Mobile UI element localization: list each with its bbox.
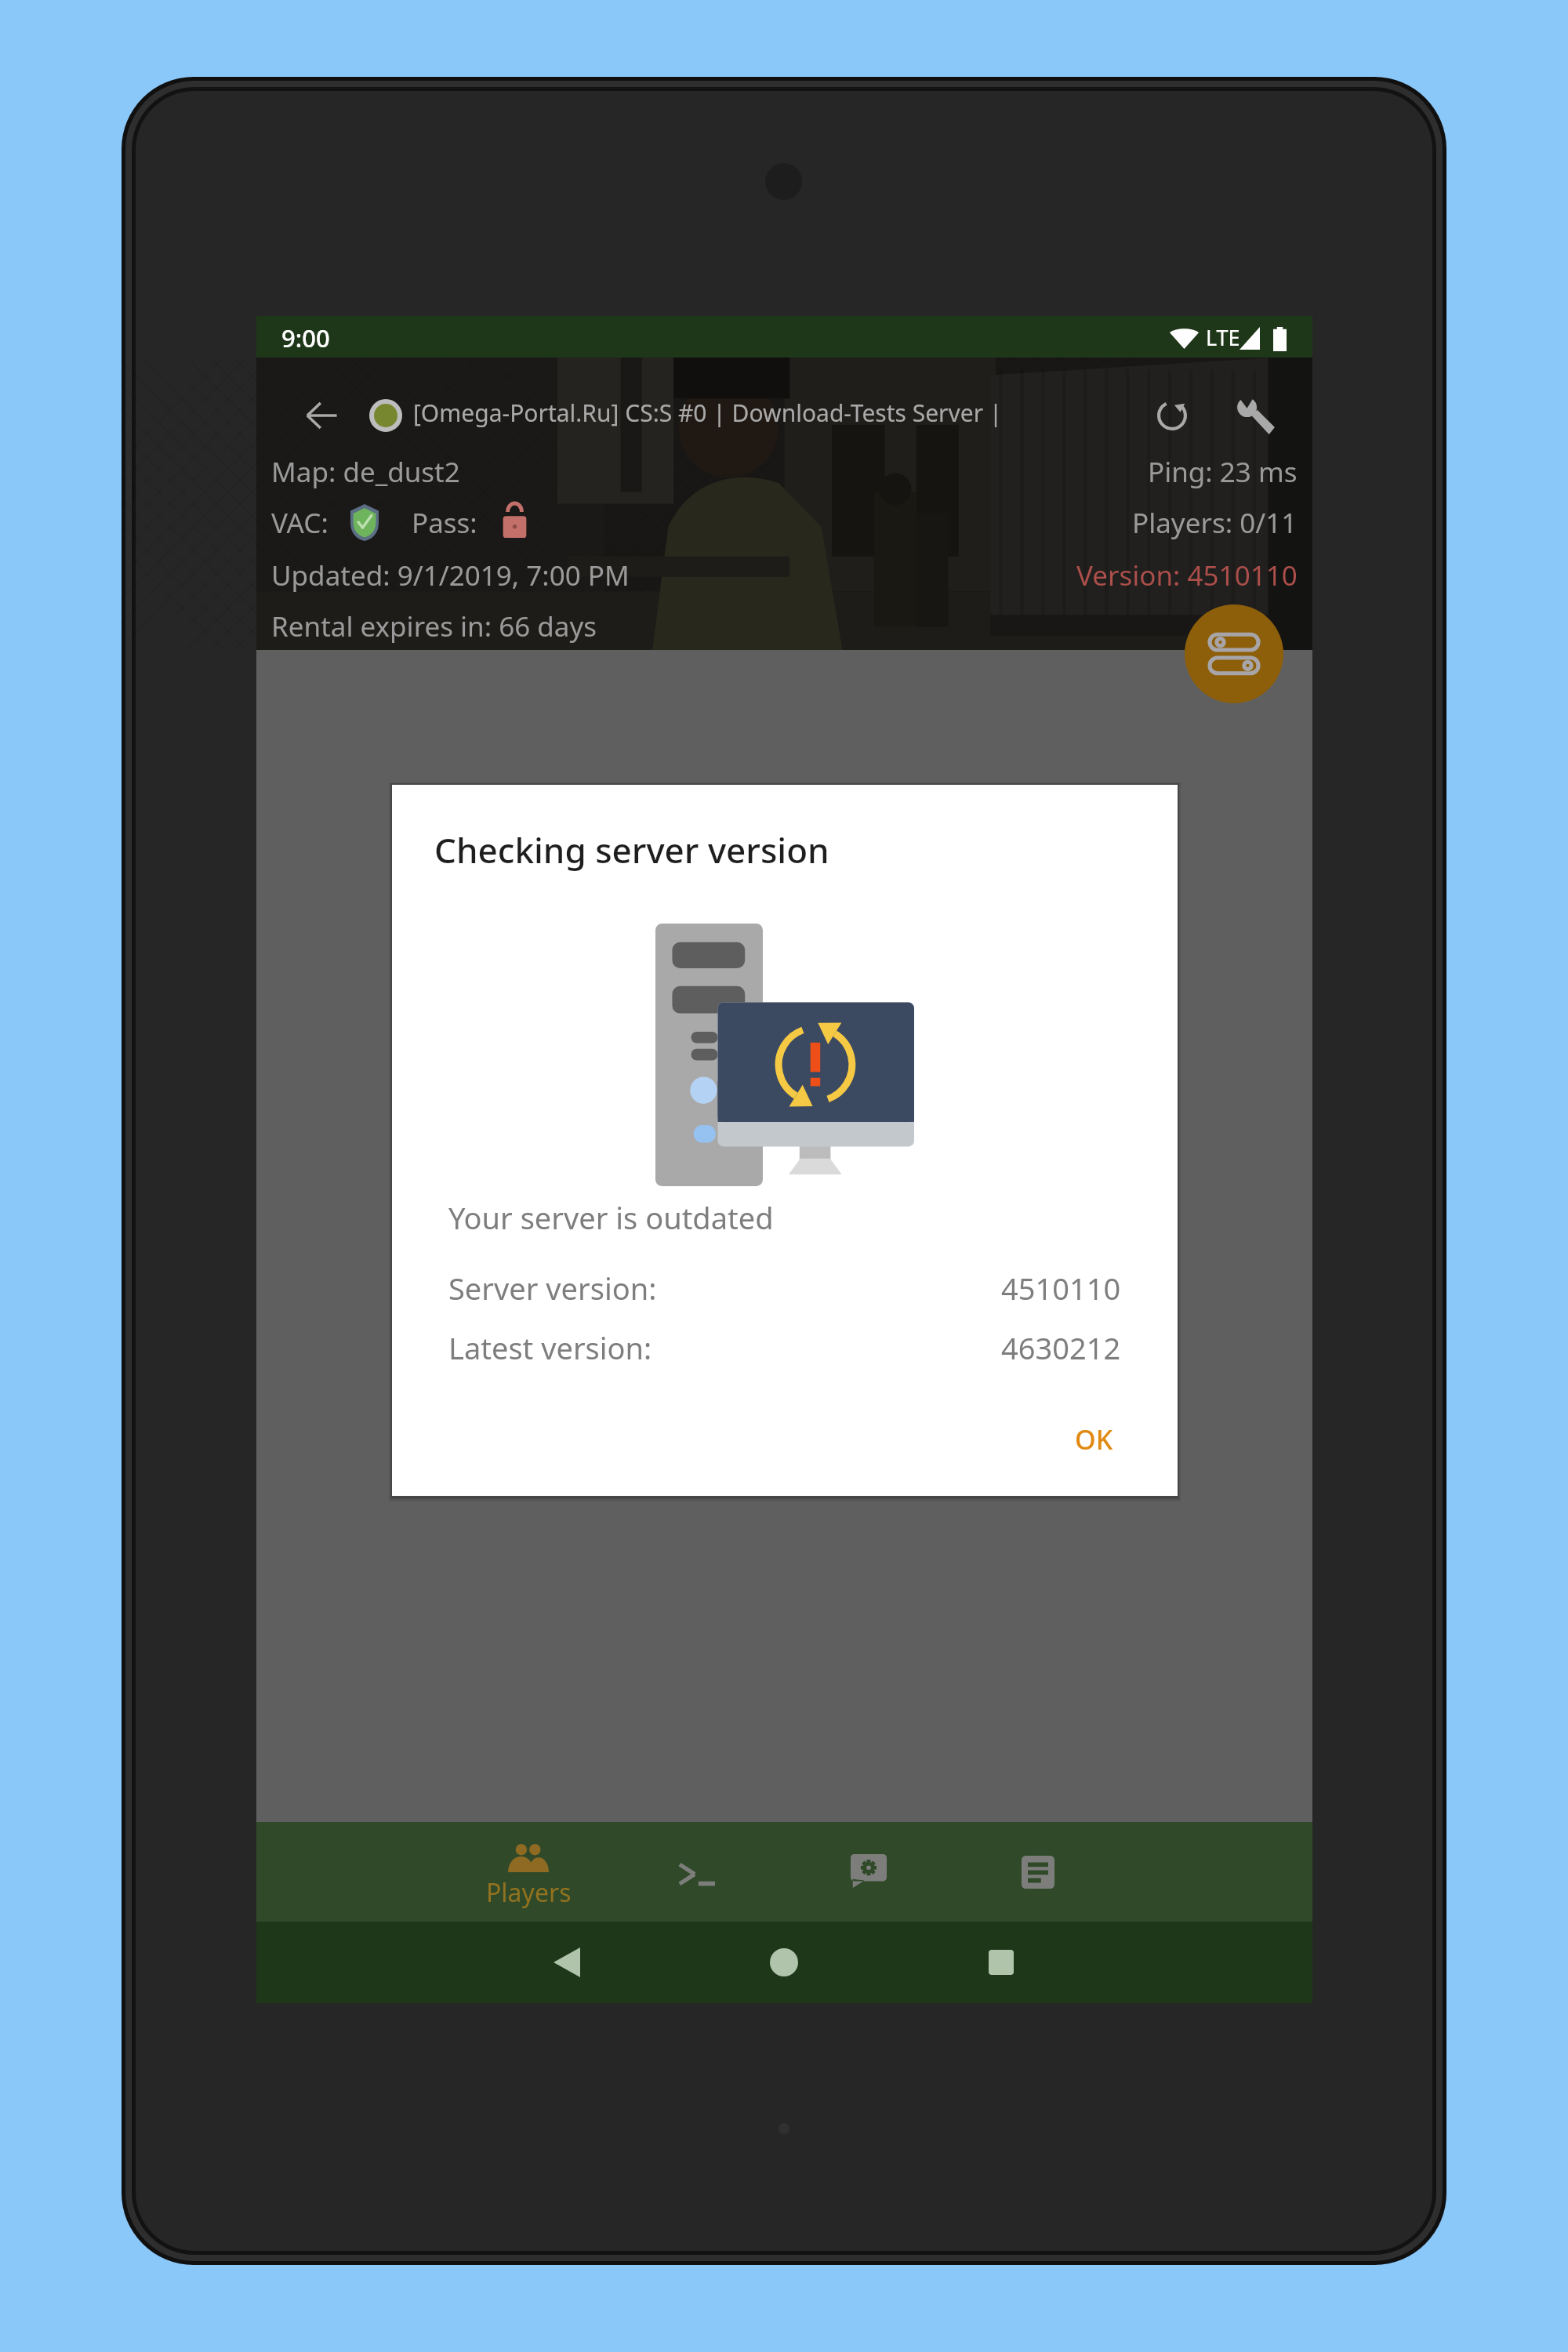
button[interactable]: Home bbox=[729, 1922, 839, 2003]
button[interactable]: Chat settings bbox=[784, 1822, 953, 1922]
staticText: LTE bbox=[1206, 323, 1240, 352]
staticText: Your server is outdated bbox=[448, 1197, 774, 1238]
staticText: Players: 0/11 bbox=[1132, 504, 1298, 542]
staticText: Pass: bbox=[412, 504, 477, 542]
button[interactable]: Players bbox=[444, 1822, 613, 1922]
button[interactable]: Console bbox=[612, 1822, 781, 1922]
staticText: [Omega-Portal.Ru] CS:S #0 | Download-Tes… bbox=[413, 397, 1003, 429]
button[interactable]: Recents bbox=[946, 1922, 1056, 2003]
button[interactable]: Back bbox=[512, 1922, 622, 2003]
staticText: Server version: bbox=[448, 1268, 657, 1308]
staticText: Map: de_dust2 bbox=[271, 453, 460, 491]
staticText: Updated: 9/1/2019, 7:00 PM bbox=[271, 557, 630, 594]
staticText: 4630212 bbox=[1001, 1327, 1121, 1368]
staticText: Checking server version bbox=[434, 826, 829, 873]
staticText: Players bbox=[486, 1875, 572, 1910]
button[interactable]: Settings bbox=[1216, 376, 1294, 455]
button[interactable]: Refresh bbox=[1133, 376, 1211, 455]
button[interactable]: Back bbox=[282, 376, 361, 455]
staticText: VAC: bbox=[271, 504, 328, 542]
staticText: OK bbox=[1075, 1421, 1113, 1457]
staticText: Ping: 23 ms bbox=[1148, 453, 1298, 491]
staticText: Latest version: bbox=[448, 1327, 652, 1368]
staticText: Version: 4510110 bbox=[1076, 557, 1298, 594]
staticText: 4510110 bbox=[1001, 1268, 1121, 1308]
staticText: 9:00 bbox=[281, 321, 330, 354]
staticText: Rental expires in: 66 days bbox=[271, 608, 597, 645]
button[interactable]: Logs bbox=[953, 1822, 1123, 1922]
button[interactable]: Server console options bbox=[1185, 604, 1283, 703]
button[interactable]: OK bbox=[1051, 1405, 1137, 1474]
